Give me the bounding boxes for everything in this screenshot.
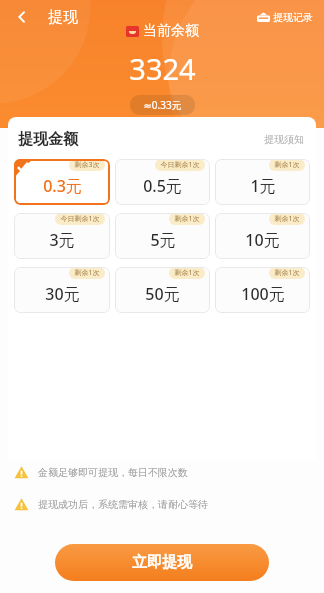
staticText: 3324 xyxy=(129,49,196,88)
staticText: 剩余1次 xyxy=(74,268,100,278)
staticText: 金额足够即可提现，每日不限次数 xyxy=(38,466,188,479)
button[interactable]: 0.5元 xyxy=(115,159,210,205)
button[interactable]: 50元 xyxy=(115,267,210,313)
staticText: 剩余3次 xyxy=(74,160,100,170)
staticText: 5元 xyxy=(150,229,176,251)
button[interactable]: 5元 xyxy=(115,213,210,259)
staticText: 当前余额 xyxy=(143,22,199,40)
staticText: 提现须知 xyxy=(264,133,304,146)
button[interactable]: 30元 xyxy=(14,267,110,313)
staticText: 提现成功后，系统需审核，请耐心等待 xyxy=(38,498,208,511)
staticText: ≈0.33元 xyxy=(143,98,182,112)
staticText: 1元 xyxy=(250,175,276,197)
staticText: 剩余1次 xyxy=(174,214,200,224)
staticText: 30元 xyxy=(45,283,80,305)
button[interactable]: 1元 xyxy=(215,159,310,205)
button[interactable]: 提现记录 xyxy=(254,8,316,27)
staticText: 今日剩余1次 xyxy=(60,214,100,224)
staticText: 提现 xyxy=(48,8,78,27)
button[interactable]: 3元 xyxy=(14,213,110,259)
staticText: 剩余1次 xyxy=(274,214,300,224)
staticText: 剩余1次 xyxy=(174,268,200,278)
staticText: 剩余1次 xyxy=(274,268,300,278)
staticText: 3元 xyxy=(49,229,75,251)
staticText: 剩余1次 xyxy=(274,160,300,170)
staticText: 0.3元 xyxy=(43,175,82,197)
staticText: 100元 xyxy=(241,283,285,305)
button[interactable]: Back xyxy=(6,1,38,33)
button[interactable]: 立即提现 xyxy=(55,544,269,581)
button[interactable]: 100元 xyxy=(215,267,310,313)
staticText: 50元 xyxy=(145,283,180,305)
staticText: 0.5元 xyxy=(143,175,182,197)
button[interactable]: 提现须知 xyxy=(262,131,306,148)
staticText: 立即提现 xyxy=(132,553,192,572)
staticText: 10元 xyxy=(245,229,280,251)
button[interactable]: 10元 xyxy=(215,213,310,259)
staticText: 提现金额 xyxy=(18,130,78,149)
button[interactable]: 0.3元 xyxy=(14,159,110,205)
staticText: 今日剩余1次 xyxy=(160,160,200,170)
staticText: 提现记录 xyxy=(273,11,313,24)
